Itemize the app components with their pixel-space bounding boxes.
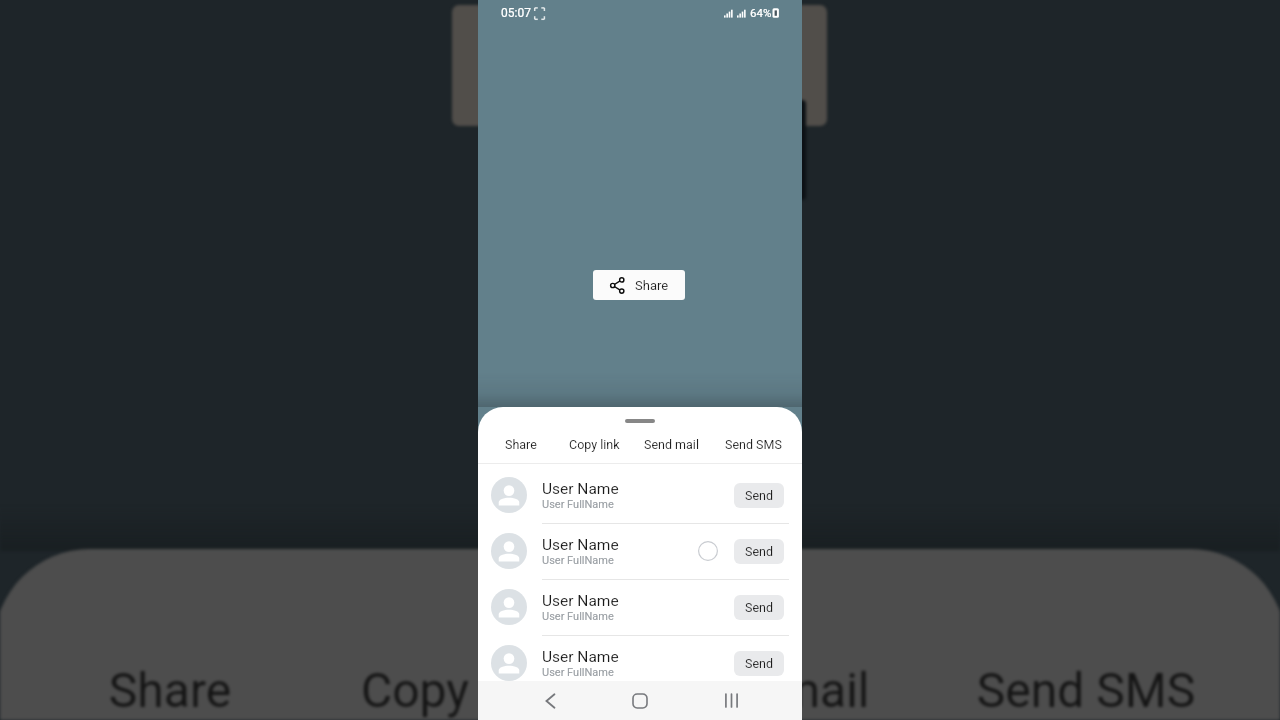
button[interactable]: Share [593,270,685,300]
staticText: Share [635,278,669,293]
staticText: User FullName [542,554,614,567]
staticText: Share [505,437,537,452]
staticText: Share [0,662,370,718]
staticText: Send [745,488,774,503]
button[interactable]: Send [734,483,784,508]
staticText: User FullName [542,498,614,511]
staticText: User Name [542,480,619,498]
button[interactable]: Send mail [631,430,711,458]
button[interactable]: Send [734,539,784,564]
staticText: Send SMS [886,662,1280,718]
button[interactable]: Back [526,681,574,720]
staticText: 64% [750,6,772,19]
button[interactable]: User Name [478,635,802,681]
staticText: Send mail [564,662,964,718]
button[interactable]: Share [481,430,561,458]
button[interactable]: Send [734,651,784,676]
button[interactable]: Home [616,681,664,720]
button[interactable]: User Name [478,523,802,579]
staticText: Send [745,600,774,615]
button[interactable]: Send [734,595,784,620]
button[interactable]: User Name [478,467,802,523]
staticText: User Name [542,536,619,554]
staticText: Send mail [644,437,699,452]
staticText: User Name [542,592,619,610]
button[interactable]: Send SMS [713,430,793,458]
staticText: Copy link [569,437,620,452]
button[interactable]: Copy link [554,430,634,458]
staticText: User FullName [542,610,614,623]
staticText: Send [745,544,774,559]
staticText: Copy link [258,662,658,718]
staticText: User FullName [542,666,614,679]
staticText: Send [745,656,774,671]
button[interactable]: User Name [478,579,802,635]
staticText: 05:07 [501,6,531,20]
button[interactable]: Recent apps [707,681,755,720]
staticText: User Name [542,648,619,666]
staticText: Send SMS [725,437,782,452]
